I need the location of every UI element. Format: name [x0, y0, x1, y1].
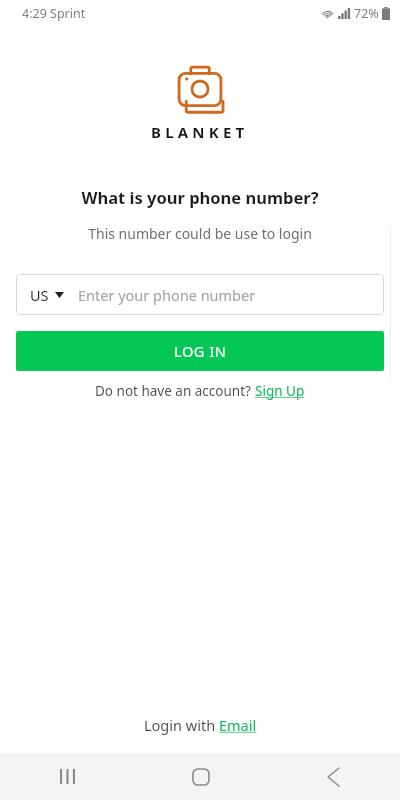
staticText: Do not have an account?: [95, 382, 255, 400]
staticText: LOG IN: [174, 341, 227, 361]
staticText: US: [30, 285, 49, 305]
staticText: BLANKET: [151, 122, 249, 142]
staticText: 72%: [354, 5, 379, 22]
staticText: What is your phone number?: [81, 186, 319, 208]
button[interactable]: Recent apps: [0, 753, 134, 800]
button[interactable]: Do not have an account?: [95, 382, 305, 400]
staticText: Email: [219, 715, 257, 735]
staticText: 4:29 Sprint: [22, 5, 86, 22]
button[interactable]: LOG IN: [16, 331, 384, 371]
button[interactable]: Login with: [144, 715, 257, 735]
button[interactable]: US: [16, 274, 384, 315]
staticText: Sign Up: [255, 382, 305, 400]
button[interactable]: Home: [134, 753, 267, 800]
staticText: Enter your phone number: [78, 285, 256, 305]
staticText: Login with: [144, 715, 219, 735]
button[interactable]: Back: [267, 753, 400, 800]
staticText: This number could be use to login: [88, 224, 312, 243]
